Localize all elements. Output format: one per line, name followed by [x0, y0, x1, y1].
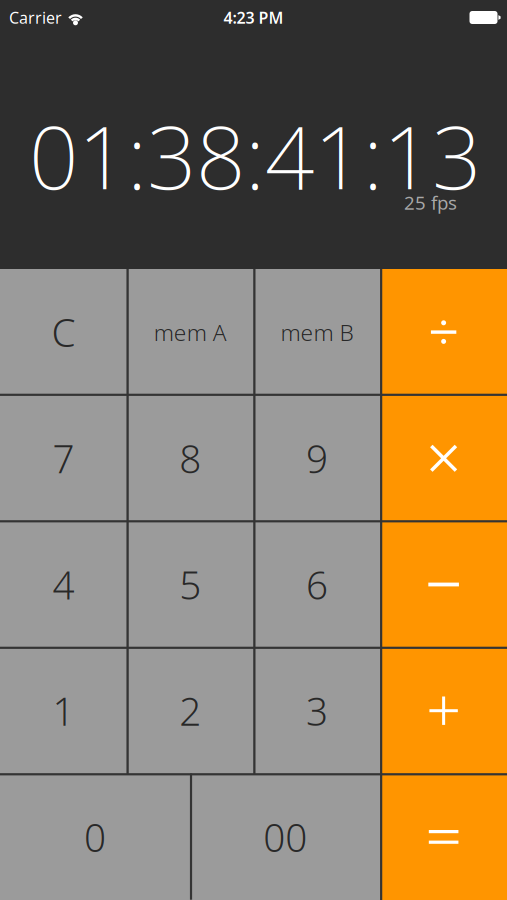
button[interactable]: 3 — [253, 648, 380, 774]
staticText: Carrier — [9, 7, 62, 28]
staticText: 1 — [52, 685, 74, 736]
staticText: 8 — [179, 433, 201, 484]
staticText: 9 — [306, 433, 328, 484]
button[interactable]: Subtract — [380, 521, 507, 648]
button[interactable]: 8 — [127, 395, 254, 521]
button[interactable]: Equals — [380, 774, 507, 900]
button[interactable]: 0 — [0, 774, 190, 900]
staticText: 25 fps — [404, 190, 457, 215]
button[interactable]: Add — [380, 648, 507, 774]
button[interactable]: C — [0, 269, 127, 395]
button[interactable]: 9 — [253, 395, 380, 521]
staticText: mem B — [280, 317, 353, 347]
button[interactable]: 1 — [0, 648, 127, 774]
button[interactable]: 5 — [127, 521, 254, 648]
button[interactable]: mem B — [253, 269, 380, 395]
button[interactable]: 4 — [0, 521, 127, 648]
button[interactable]: mem A — [127, 269, 254, 395]
staticText: mem A — [154, 317, 227, 347]
staticText: C — [51, 306, 75, 358]
button[interactable]: 7 — [0, 395, 127, 521]
staticText: 01:38:41:13 — [29, 98, 481, 213]
staticText: 4:23 PM — [223, 7, 283, 28]
staticText: 4 — [52, 559, 74, 610]
staticText: 5 — [179, 559, 201, 610]
staticText: 7 — [52, 433, 74, 484]
button[interactable]: Multiply — [380, 395, 507, 521]
staticText: 0 — [84, 811, 106, 862]
staticText: 3 — [306, 685, 328, 736]
staticText: 00 — [263, 811, 307, 862]
button[interactable]: 00 — [190, 774, 380, 900]
staticText: 2 — [179, 685, 201, 736]
staticText: 6 — [306, 559, 328, 610]
button[interactable]: 6 — [253, 521, 380, 648]
button[interactable]: Divide — [380, 269, 507, 395]
button[interactable]: 2 — [127, 648, 254, 774]
